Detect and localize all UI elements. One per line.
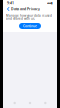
- button[interactable]: Back: [6, 6, 11, 12]
- staticText: Data and Privacy: [11, 7, 40, 11]
- staticText: Manage how your data is used and shared …: [6, 14, 52, 20]
- button[interactable]: Continue: [19, 23, 41, 29]
- staticText: 9:41: [7, 1, 14, 5]
- button[interactable]: Home: [7, 98, 22, 108]
- button[interactable]: Settings: [38, 98, 53, 108]
- button[interactable]: Search: [22, 98, 38, 108]
- staticText: Continue: [23, 24, 37, 28]
- staticText: ▰▰▮: [47, 1, 53, 5]
